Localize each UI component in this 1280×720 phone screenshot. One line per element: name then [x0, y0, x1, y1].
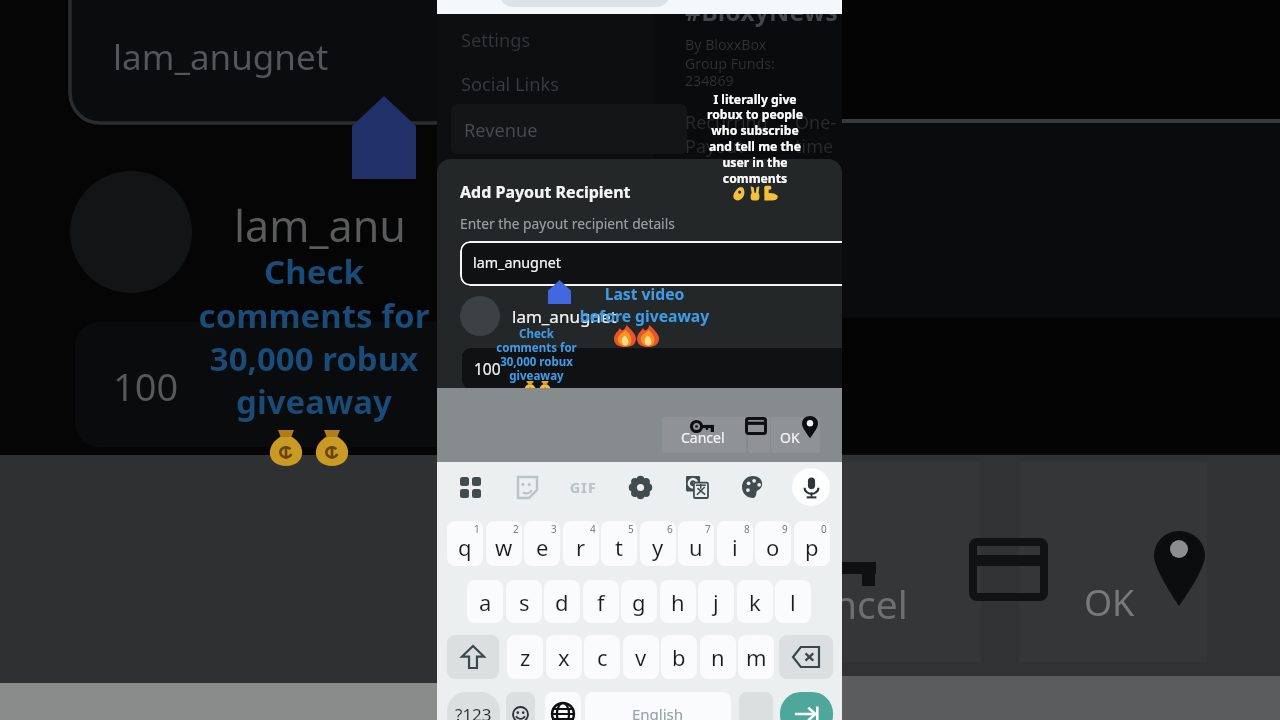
staticText: Check comments for 30,000 robux giveaway: [191, 249, 437, 423]
staticText: By BloxxBox: [685, 35, 767, 54]
button[interactable]: [460, 241, 842, 286]
button[interactable]: Clipboard: [450, 467, 490, 507]
staticText: f: [597, 587, 605, 617]
button[interactable]: Change language: [545, 692, 581, 720]
staticText: 8: [744, 522, 750, 536]
staticText: l: [790, 587, 796, 617]
staticText: English: [632, 704, 684, 720]
staticText: Settings: [461, 28, 531, 53]
staticText: p: [805, 532, 819, 562]
staticText: OK: [780, 428, 800, 446]
button[interactable]: t: [601, 521, 637, 566]
staticText: s: [519, 587, 530, 617]
staticText: 5: [628, 522, 634, 536]
button[interactable]: m: [738, 635, 774, 679]
staticText: o: [766, 532, 780, 562]
button[interactable]: [462, 348, 842, 388]
staticText: 100: [113, 360, 179, 412]
button[interactable]: c: [584, 635, 620, 679]
button[interactable]: z: [507, 635, 543, 679]
button[interactable]: GIF: [563, 467, 603, 507]
button[interactable]: Enter: [780, 692, 833, 720]
button[interactable]: Translate: [677, 467, 717, 507]
button[interactable]: q: [447, 521, 483, 566]
staticText: #BloxyNews: [685, 0, 838, 28]
staticText: e: [536, 532, 549, 562]
staticText: a: [479, 587, 492, 617]
button[interactable]: w: [486, 521, 522, 566]
staticText: ncel: [833, 577, 908, 630]
staticText: 6: [667, 522, 673, 536]
button[interactable]: Emoji: [506, 692, 535, 720]
staticText: v: [635, 642, 647, 672]
staticText: Social Links: [461, 72, 559, 97]
button[interactable]: x: [546, 635, 582, 679]
staticText: GIF: [570, 478, 597, 497]
staticText: I literally give robux to people who sub…: [700, 91, 810, 187]
button[interactable]: Themes: [733, 467, 773, 507]
button[interactable]: h: [660, 580, 696, 623]
staticText: g: [632, 587, 646, 617]
button[interactable]: l: [775, 580, 811, 623]
button[interactable]: d: [544, 580, 580, 623]
staticText: r: [576, 532, 586, 562]
button[interactable]: Backspace: [779, 635, 833, 679]
button[interactable]: p: [794, 521, 830, 566]
button[interactable]: ?123: [447, 692, 500, 720]
staticText: One- time: [795, 110, 837, 158]
button[interactable]: Shift: [447, 635, 499, 679]
staticText: h: [671, 587, 685, 617]
button[interactable]: OK: [780, 428, 804, 446]
button[interactable]: Stickers: [506, 467, 546, 507]
staticText: 3: [551, 522, 557, 536]
button[interactable]: Settings: [620, 467, 660, 507]
button[interactable]: [451, 104, 687, 154]
button[interactable]: v: [623, 635, 659, 679]
staticText: Payout: [685, 134, 744, 159]
button[interactable]: u: [678, 521, 714, 566]
staticText: 234869: [685, 71, 734, 90]
staticText: OK: [1084, 578, 1135, 627]
staticText: 4: [590, 522, 596, 536]
button[interactable]: f: [583, 580, 619, 623]
staticText: 0: [821, 522, 827, 536]
staticText: lam_anugnet: [473, 253, 561, 272]
staticText: lam_anugnet: [512, 305, 617, 328]
staticText: 7: [705, 522, 711, 536]
staticText: 1: [474, 522, 480, 536]
staticText: lam_anugnet: [113, 33, 329, 81]
staticText: Check comments for 30,000 robux giveaway: [495, 326, 578, 383]
staticText: Enter the payout recipient details: [460, 214, 675, 233]
staticText: y: [652, 532, 664, 562]
staticText: b: [672, 642, 686, 672]
button[interactable]: a: [467, 580, 503, 623]
button[interactable]: e: [524, 521, 560, 566]
button[interactable]: r: [563, 521, 599, 566]
staticText: z: [520, 642, 531, 672]
staticText: Last video before giveaway: [562, 283, 727, 327]
staticText: ?123: [455, 703, 492, 720]
staticText: x: [558, 642, 570, 672]
other: Address: [802, 416, 818, 438]
button[interactable]: g: [621, 580, 657, 623]
button[interactable]: Voice input: [791, 467, 831, 507]
staticText: m: [746, 642, 767, 672]
button[interactable]: j: [698, 580, 734, 623]
button[interactable]: y: [640, 521, 676, 566]
button[interactable]: n: [700, 635, 736, 679]
button[interactable]: s: [506, 580, 542, 623]
other: Payment card: [745, 417, 767, 435]
button[interactable]: k: [737, 580, 773, 623]
button[interactable]: i: [717, 521, 753, 566]
button[interactable]: English: [585, 692, 731, 720]
staticText: 100: [474, 358, 501, 379]
button[interactable]: b: [661, 635, 697, 679]
staticText: d: [555, 587, 569, 617]
other: Password: [691, 421, 714, 432]
button[interactable]: Cancel: [681, 428, 737, 446]
staticText: Add Payout Recipient: [460, 181, 631, 203]
staticText: u: [689, 532, 703, 562]
button[interactable]: o: [755, 521, 791, 566]
staticText: c: [597, 642, 608, 672]
